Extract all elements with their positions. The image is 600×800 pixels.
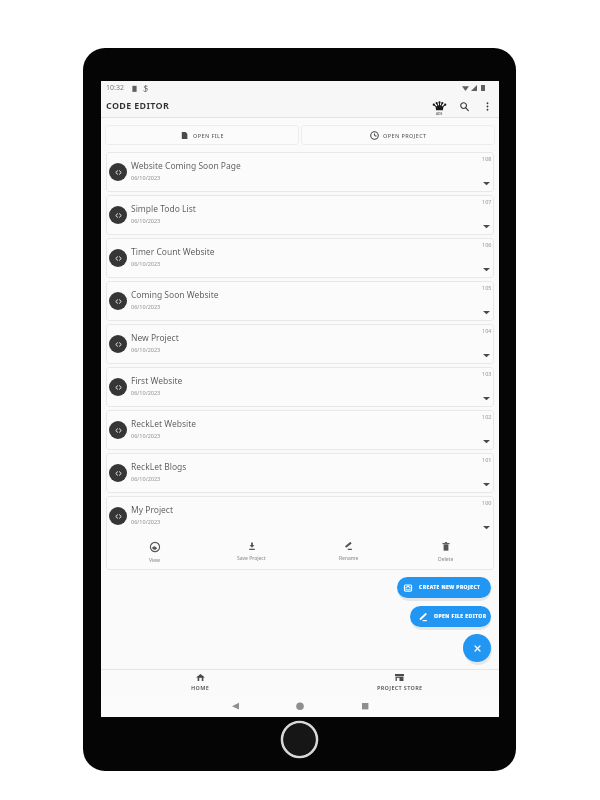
- button[interactable]: Save Project: [203, 534, 300, 566]
- staticText: Coming Soon Website: [131, 289, 219, 301]
- button[interactable]: HOME: [101, 670, 300, 697]
- button[interactable]: First Website: [106, 367, 494, 407]
- staticText: HOME: [191, 684, 210, 691]
- button[interactable]: OPEN FILE EDITOR: [410, 606, 491, 627]
- staticText: 101: [482, 456, 492, 463]
- button[interactable]: Search: [454, 96, 474, 116]
- button[interactable]: ReckLet Website: [106, 410, 494, 450]
- staticText: 10:32: [106, 83, 124, 93]
- button[interactable]: Simple Todo List: [106, 195, 494, 235]
- staticText: Save Project: [237, 555, 266, 562]
- button[interactable]: OPEN PROJECT: [301, 125, 495, 145]
- button[interactable]: My Project: [106, 496, 494, 570]
- button[interactable]: ReckLet Blogs: [106, 453, 494, 493]
- staticText: 06/10/2023: [131, 260, 161, 267]
- staticText: ReckLet Website: [131, 418, 197, 430]
- button[interactable]: Rename: [300, 534, 397, 566]
- staticText: Timer Count Website: [131, 246, 215, 258]
- staticText: My Project: [131, 504, 174, 516]
- staticText: Simple Todo List: [131, 203, 196, 215]
- staticText: 06/10/2023: [131, 475, 161, 482]
- staticText: OPEN FILE: [193, 132, 224, 139]
- staticText: Rename: [339, 555, 359, 562]
- staticText: 105: [482, 284, 492, 291]
- staticText: 06/10/2023: [131, 217, 161, 224]
- staticText: 06/10/2023: [131, 346, 161, 353]
- button[interactable]: Delete: [397, 534, 494, 567]
- staticText: 06/10/2023: [131, 432, 161, 439]
- button[interactable]: PROJECT STORE: [300, 670, 499, 697]
- staticText: 06/10/2023: [131, 174, 161, 181]
- staticText: 102: [482, 413, 492, 420]
- staticText: OPEN FILE EDITOR: [434, 613, 487, 620]
- staticText: ADS: [436, 112, 443, 116]
- staticText: Website Coming Soon Page: [131, 160, 241, 172]
- staticText: New Project: [131, 332, 179, 344]
- staticText: PROJECT STORE: [377, 684, 423, 691]
- button[interactable]: Timer Count Website: [106, 238, 494, 278]
- button[interactable]: Ads: [429, 96, 449, 116]
- button[interactable]: Coming Soon Website: [106, 281, 494, 321]
- button[interactable]: View: [106, 534, 203, 568]
- staticText: 100: [482, 499, 492, 506]
- button[interactable]: OPEN FILE: [105, 125, 299, 145]
- staticText: CODE EDITOR: [106, 99, 170, 111]
- staticText: 107: [482, 198, 492, 205]
- staticText: 106: [482, 241, 492, 248]
- staticText: View: [149, 557, 160, 564]
- staticText: OPEN PROJECT: [383, 132, 427, 139]
- button[interactable]: Close: [463, 634, 491, 662]
- staticText: 06/10/2023: [131, 518, 161, 525]
- staticText: 104: [482, 327, 492, 334]
- button[interactable]: New Project: [106, 324, 494, 364]
- staticText: 108: [482, 155, 492, 162]
- staticText: Delete: [438, 556, 454, 563]
- staticText: ReckLet Blogs: [131, 461, 187, 473]
- button[interactable]: Website Coming Soon Page: [106, 152, 494, 192]
- staticText: CREATE NEW PROJECT: [419, 584, 481, 591]
- staticText: First Website: [131, 375, 183, 387]
- staticText: 06/10/2023: [131, 389, 161, 396]
- button[interactable]: CREATE NEW PROJECT: [397, 577, 491, 598]
- button[interactable]: More options: [477, 96, 497, 116]
- staticText: 06/10/2023: [131, 303, 161, 310]
- staticText: 103: [482, 370, 492, 377]
